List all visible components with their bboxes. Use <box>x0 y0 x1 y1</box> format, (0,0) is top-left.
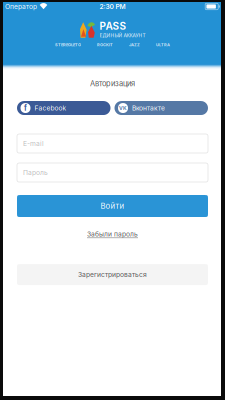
staticText: PASS <box>99 20 126 32</box>
staticText: ЕДИНЫЙ АККАУНТ <box>99 33 145 38</box>
button[interactable]: Забыли пароль <box>81 227 144 241</box>
staticText: ROCKIT <box>97 42 113 47</box>
staticText: Facebook <box>34 104 66 112</box>
staticText: Забыли пароль <box>87 230 138 238</box>
staticText: STEREOLETO <box>55 42 81 47</box>
staticText: Зарегистрироваться <box>78 271 147 279</box>
staticText: E-mail <box>23 139 44 148</box>
staticText: Авторизация <box>90 79 135 88</box>
staticText: ULTRA <box>156 42 170 47</box>
staticText: 2:30 PM <box>99 2 125 11</box>
staticText: Пароль <box>23 168 48 177</box>
staticText: Вконтакте <box>132 104 165 112</box>
staticText: VK <box>119 105 127 111</box>
staticText: Оператор <box>5 2 37 11</box>
button[interactable]: VK <box>114 101 208 115</box>
button[interactable]: f <box>17 101 110 115</box>
button[interactable]: Зарегистрироваться <box>17 264 208 285</box>
button[interactable]: Войти <box>17 195 208 217</box>
staticText: Войти <box>100 201 124 211</box>
staticText: f <box>24 104 27 112</box>
staticText: JAZZ <box>129 42 140 47</box>
